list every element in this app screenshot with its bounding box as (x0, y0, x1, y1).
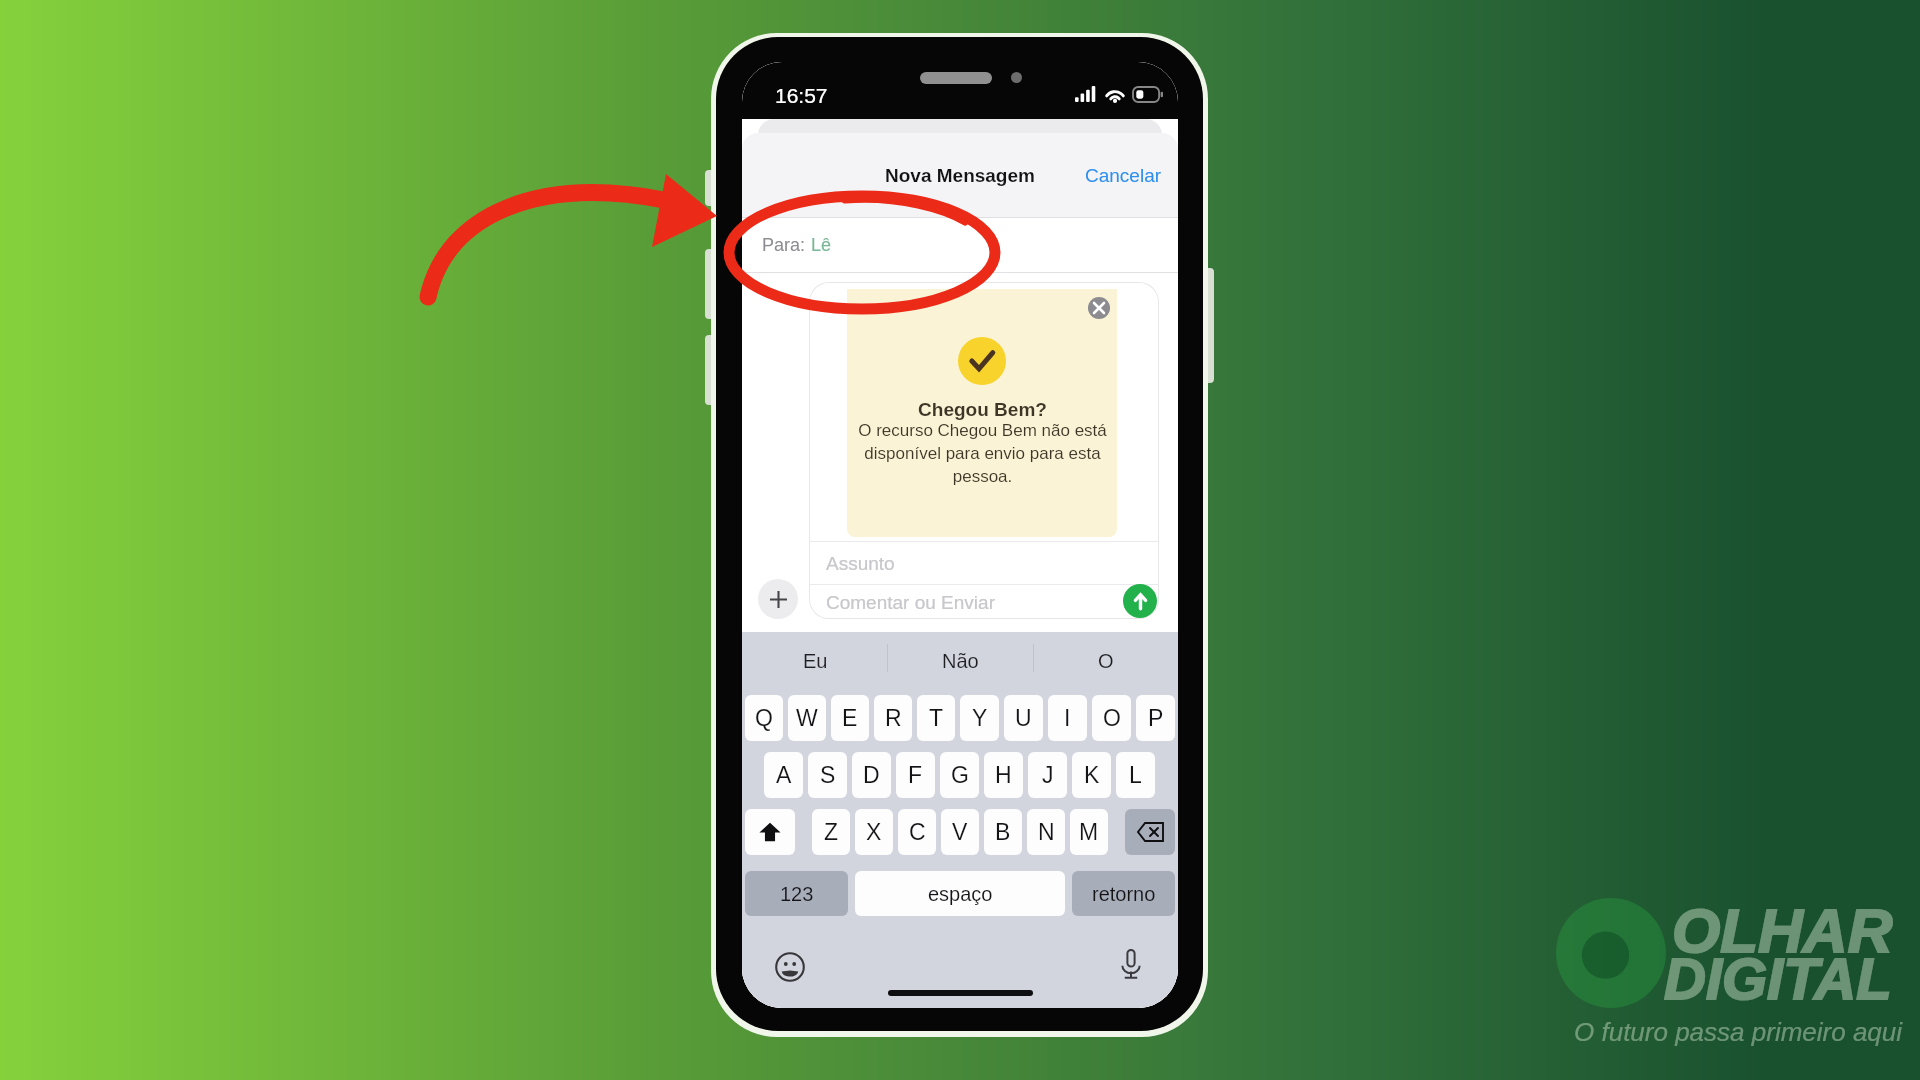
staticText: O recurso Chegou Bem não está disponível… (858, 421, 1107, 486)
staticText: DIGITAL (1664, 946, 1892, 1011)
button[interactable]: O (1092, 695, 1131, 741)
button[interactable]: T (917, 695, 955, 741)
button[interactable]: retorno (1072, 871, 1175, 916)
staticText: Z (824, 819, 839, 845)
button[interactable]: C (898, 809, 936, 855)
button[interactable]: P (1136, 695, 1175, 741)
button[interactable]: 123 (745, 871, 848, 916)
button[interactable]: U (1004, 695, 1043, 741)
staticText: R (885, 705, 902, 731)
staticText: I (1064, 705, 1071, 731)
staticText: O futuro passa primeiro aqui (1574, 1017, 1903, 1046)
staticText: OLHAR (1672, 896, 1893, 965)
staticText: S (820, 762, 836, 788)
staticText: G (951, 762, 969, 788)
button[interactable]: Assunto (809, 542, 1159, 584)
staticText: E (842, 705, 858, 731)
button[interactable]: Não (888, 632, 1033, 690)
button[interactable]: W (788, 695, 826, 741)
button[interactable]: K (1072, 752, 1111, 798)
button[interactable]: V (941, 809, 979, 855)
staticText: H (995, 762, 1012, 788)
button[interactable]: I (1048, 695, 1087, 741)
button[interactable]: espaço (855, 871, 1065, 916)
staticText: O (1103, 705, 1121, 731)
button[interactable]: R (874, 695, 912, 741)
button[interactable]: Shift (745, 809, 795, 855)
staticText: Q (755, 705, 773, 731)
staticText: D (863, 762, 880, 788)
button[interactable]: Fechar (1088, 297, 1110, 319)
staticText: K (1084, 762, 1100, 788)
button[interactable]: Y (960, 695, 999, 741)
button[interactable]: H (984, 752, 1023, 798)
staticText: 16:57 (775, 84, 828, 107)
button[interactable]: Apagar (1125, 809, 1175, 855)
staticText: T (929, 705, 944, 731)
staticText: J (1042, 762, 1054, 788)
button[interactable]: G (940, 752, 979, 798)
staticText: X (866, 819, 882, 845)
staticText: L (1129, 762, 1142, 788)
staticText: B (995, 819, 1011, 845)
button[interactable]: A (764, 752, 803, 798)
staticText: N (1038, 819, 1055, 845)
staticText: Lê (811, 235, 832, 255)
button[interactable]: Adicionar anexo (758, 579, 798, 619)
button[interactable]: Para: (742, 218, 1178, 272)
staticText: F (908, 762, 923, 788)
staticText: 123 (780, 883, 814, 905)
button[interactable]: Eu (742, 632, 888, 690)
button[interactable]: L (1116, 752, 1155, 798)
staticText: espaço (928, 883, 993, 905)
button[interactable]: S (808, 752, 847, 798)
staticText: V (952, 819, 968, 845)
staticText: Comentar ou Enviar (826, 592, 995, 613)
staticText: M (1079, 819, 1099, 845)
staticText: retorno (1092, 883, 1156, 905)
staticText: Para: (762, 235, 811, 255)
button[interactable]: X (855, 809, 893, 855)
staticText: Cancelar (1085, 165, 1162, 186)
staticText: Y (972, 705, 988, 731)
staticText: U (1015, 705, 1032, 731)
button[interactable]: Z (812, 809, 850, 855)
button[interactable]: J (1028, 752, 1067, 798)
button[interactable]: E (831, 695, 869, 741)
staticText: W (796, 705, 818, 731)
button[interactable]: Comentar ou Enviar (809, 585, 1159, 619)
staticText: Nova Mensagem (885, 165, 1035, 186)
staticText: O (1098, 650, 1114, 672)
staticText: Não (942, 650, 979, 672)
staticText: Eu (803, 650, 828, 672)
button[interactable]: N (1027, 809, 1065, 855)
button[interactable]: Cancelar (1069, 157, 1178, 194)
button[interactable]: B (984, 809, 1022, 855)
button[interactable]: F (896, 752, 935, 798)
staticText: P (1148, 705, 1164, 731)
staticText: Assunto (826, 553, 895, 574)
button[interactable]: D (852, 752, 891, 798)
button[interactable]: Emoji (771, 948, 809, 986)
button[interactable]: Microfone (1112, 946, 1150, 984)
staticText: Chegou Bem? (918, 399, 1047, 420)
staticText: A (776, 762, 792, 788)
button[interactable]: O (1033, 632, 1178, 690)
staticText: C (909, 819, 926, 845)
button[interactable]: M (1070, 809, 1108, 855)
button[interactable]: Q (745, 695, 783, 741)
button[interactable]: Enviar (1123, 584, 1157, 618)
